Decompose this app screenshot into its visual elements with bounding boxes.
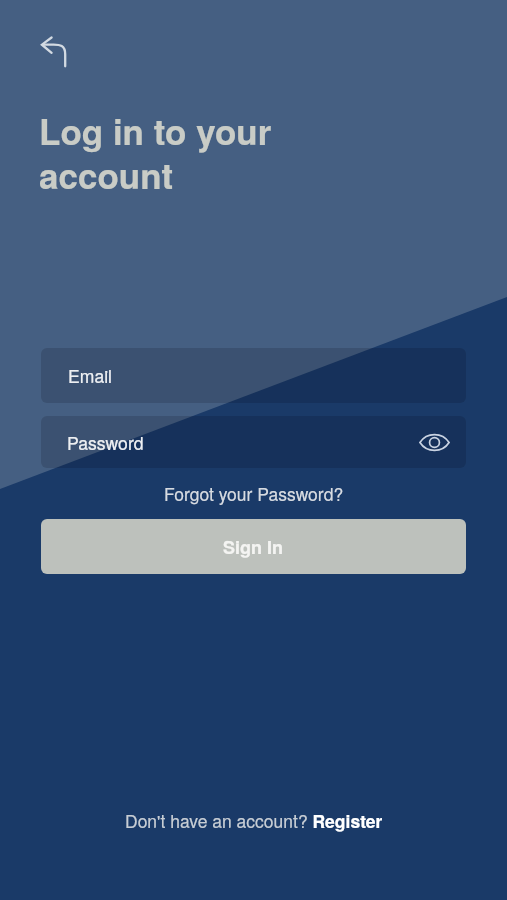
button[interactable]: Sign In: [41, 519, 466, 574]
button[interactable]: Forgot your Password?: [41, 481, 466, 506]
staticText: Email: [68, 363, 112, 388]
button[interactable]: Show password: [411, 419, 457, 465]
staticText: Sign In: [223, 534, 284, 560]
staticText: Don't have an account? Register: [125, 808, 383, 833]
staticText: Log in to your account: [39, 106, 272, 200]
button[interactable]: Password: [41, 416, 466, 468]
staticText: Password: [67, 430, 144, 455]
button[interactable]: Email: [41, 348, 466, 403]
button[interactable]: Back: [29, 26, 81, 78]
button[interactable]: Don't have an account? Register: [125, 808, 383, 833]
